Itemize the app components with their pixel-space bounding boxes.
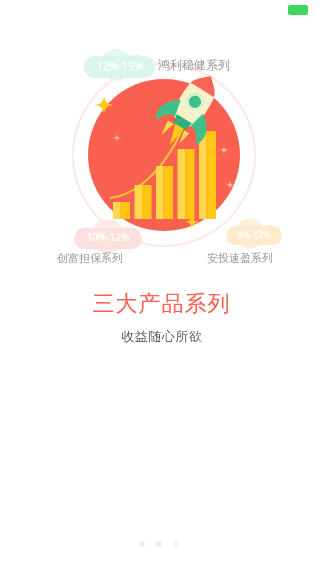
staticText: 三大产品系列 — [92, 290, 230, 318]
staticText: 10%-12% — [80, 230, 136, 572]
staticText: 收益随心所欲 — [121, 328, 202, 344]
staticText: 鸿利稳健系列 — [158, 57, 230, 72]
button[interactable] — [139, 541, 145, 547]
staticText: 12%-15% — [90, 58, 150, 572]
button[interactable] — [173, 541, 179, 547]
button[interactable] — [156, 541, 162, 547]
button[interactable]: 跳过 — [288, 5, 308, 15]
staticText: 安投速盈系列 — [207, 251, 273, 265]
staticText: 8%-12% — [231, 228, 277, 572]
staticText: 创富担保系列 — [57, 251, 123, 265]
